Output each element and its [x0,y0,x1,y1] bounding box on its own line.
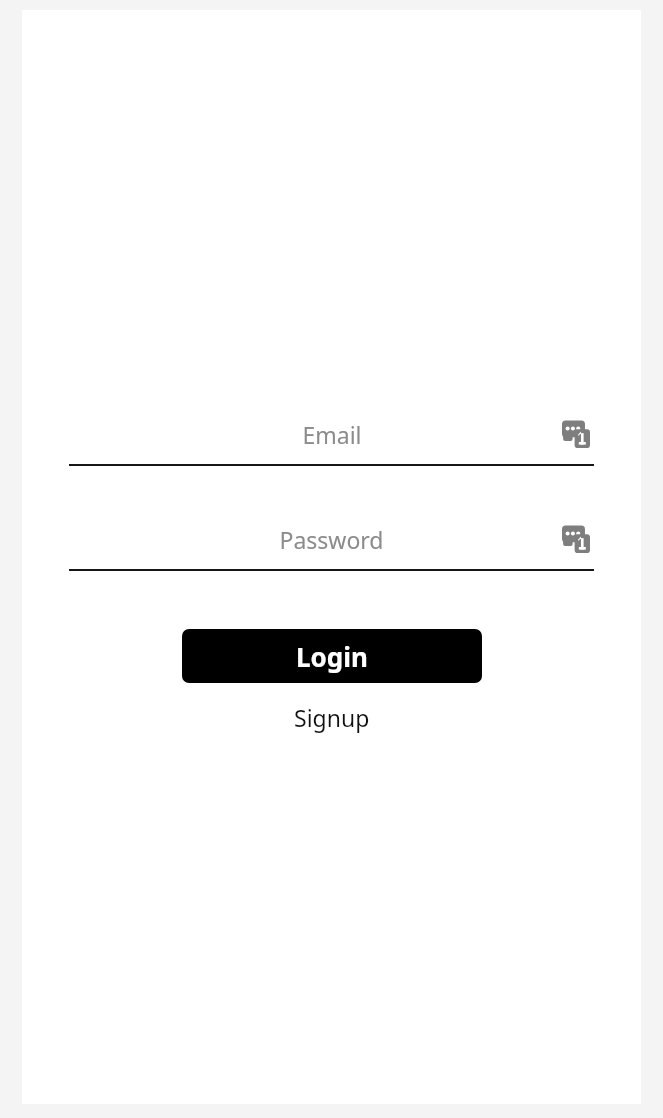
button[interactable]: Signup [282,698,382,737]
button[interactable]: Login [182,629,482,683]
staticText: Password [279,524,384,555]
button[interactable]: Password [69,509,594,569]
button[interactable]: Email [69,404,594,464]
button[interactable]: Autofill Password [558,521,594,557]
button[interactable]: Autofill Email [558,416,594,452]
staticText: Login [296,639,368,674]
staticText: Signup [294,702,370,733]
staticText: Email [302,419,362,450]
